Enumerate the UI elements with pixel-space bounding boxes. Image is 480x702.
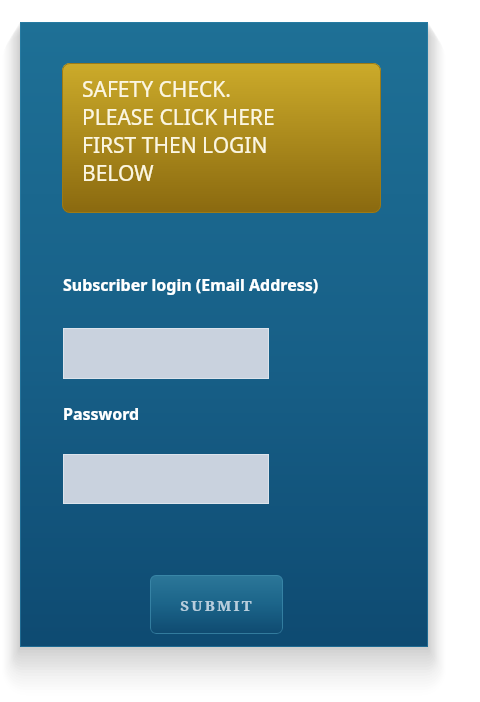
button[interactable]: SUBMIT xyxy=(150,575,283,634)
staticText: SAFETY CHECK. PLEASE CLICK HERE FIRST TH… xyxy=(82,75,275,187)
staticText: Subscriber login (Email Address) xyxy=(63,274,319,296)
staticText: SUBMIT xyxy=(180,595,254,615)
staticText: Password xyxy=(63,403,140,425)
button[interactable]: SAFETY CHECK. PLEASE CLICK HERE FIRST TH… xyxy=(62,63,381,213)
